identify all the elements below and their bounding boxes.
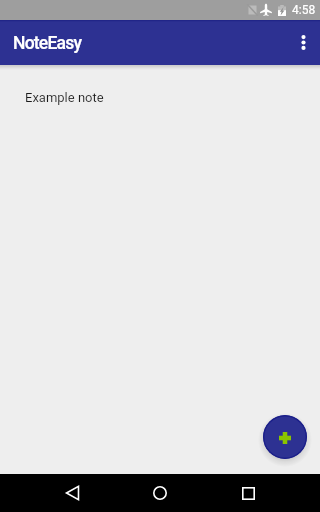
button[interactable]: More options — [286, 20, 320, 65]
button[interactable]: Home — [138, 474, 182, 512]
staticText: Example note — [25, 90, 104, 105]
staticText: 4:58 — [292, 3, 316, 17]
button[interactable]: Back — [50, 474, 94, 512]
button[interactable]: Add note — [263, 415, 307, 459]
button[interactable]: Example note — [0, 78, 320, 116]
button[interactable]: Recent apps — [226, 474, 270, 512]
staticText: NoteEasy — [13, 33, 82, 54]
